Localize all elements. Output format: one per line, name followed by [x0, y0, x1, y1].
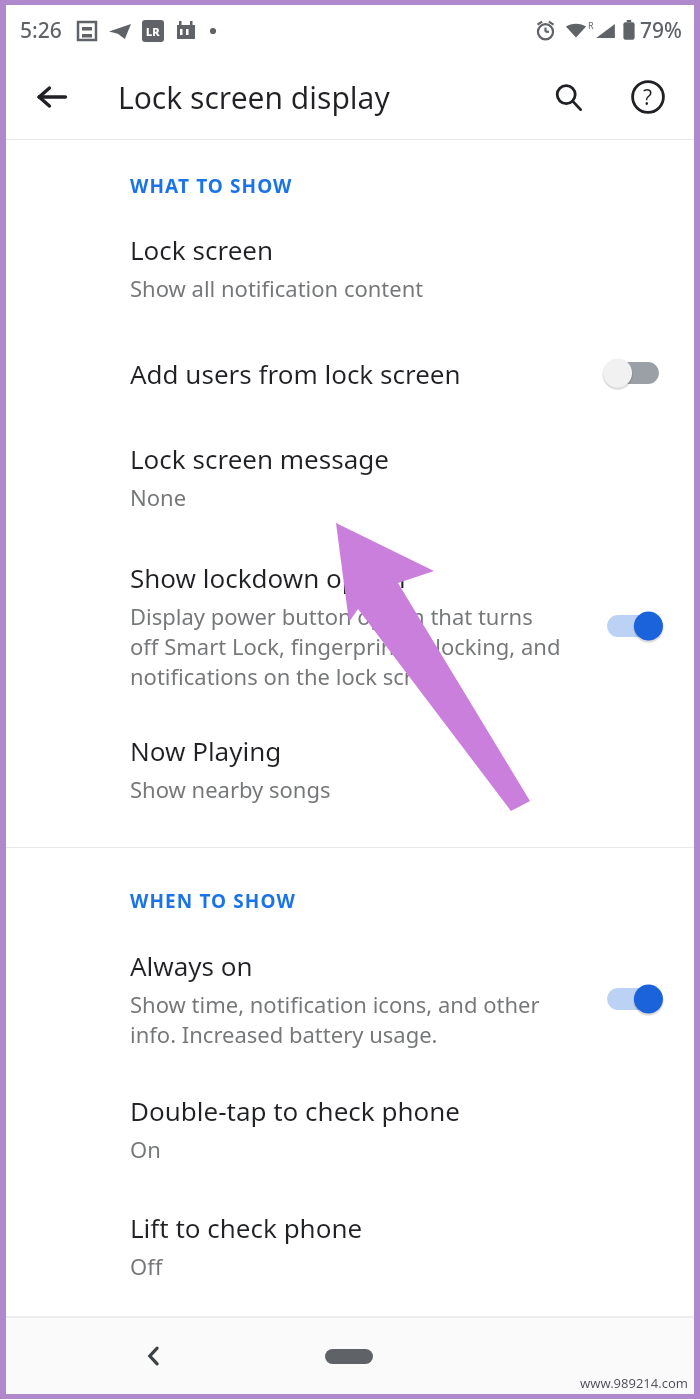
staticText: LR	[146, 24, 160, 39]
staticText: Add users from lock screen	[130, 356, 461, 391]
staticText: Show nearby songs	[130, 774, 331, 804]
button[interactable]: Lock screen message	[6, 441, 694, 512]
button[interactable]: Help	[620, 69, 676, 125]
button[interactable]: Lift to check phone	[6, 1210, 694, 1281]
staticText: Double-tap to check phone	[130, 1093, 460, 1128]
staticText: Lock screen display	[118, 77, 390, 118]
button[interactable]: Lock screen	[6, 232, 694, 303]
button[interactable]: Add users from lock screen	[6, 351, 694, 395]
staticText: Off	[130, 1251, 163, 1281]
button[interactable]: On	[598, 604, 668, 648]
staticText: None	[130, 482, 187, 512]
staticText: 79%	[640, 16, 682, 45]
button[interactable]: Search	[540, 69, 596, 125]
button[interactable]: Show lockdown option	[6, 560, 694, 691]
staticText: Always on	[130, 948, 253, 983]
button[interactable]: Off	[598, 351, 668, 395]
staticText: WHAT TO SHOW	[130, 173, 293, 199]
staticText: R	[588, 19, 594, 31]
staticText: Display power button option that turns o…	[130, 601, 561, 691]
staticText: Lock screen message	[130, 441, 389, 476]
button[interactable]: Now Playing	[6, 733, 694, 804]
button[interactable]: Back	[22, 67, 82, 127]
button[interactable]: Double-tap to check phone	[6, 1093, 694, 1164]
staticText: WHEN TO SHOW	[130, 888, 296, 914]
staticText: Show all notification content	[130, 273, 424, 303]
staticText: www.989214.com	[580, 1374, 688, 1392]
button[interactable]: Home	[312, 1336, 386, 1376]
staticText: Lift to check phone	[130, 1210, 363, 1245]
button[interactable]: Always on	[6, 948, 694, 1049]
staticText: Lock screen	[130, 232, 274, 267]
staticText: Now Playing	[130, 733, 282, 768]
staticText: ?	[643, 83, 653, 112]
staticText: Show time, notification icons, and other…	[130, 989, 540, 1049]
button[interactable]: On	[598, 977, 668, 1021]
staticText: Show lockdown option	[130, 560, 406, 595]
staticText: 5:26	[20, 16, 62, 45]
staticText: On	[130, 1134, 161, 1164]
button[interactable]: Back	[124, 1326, 184, 1386]
